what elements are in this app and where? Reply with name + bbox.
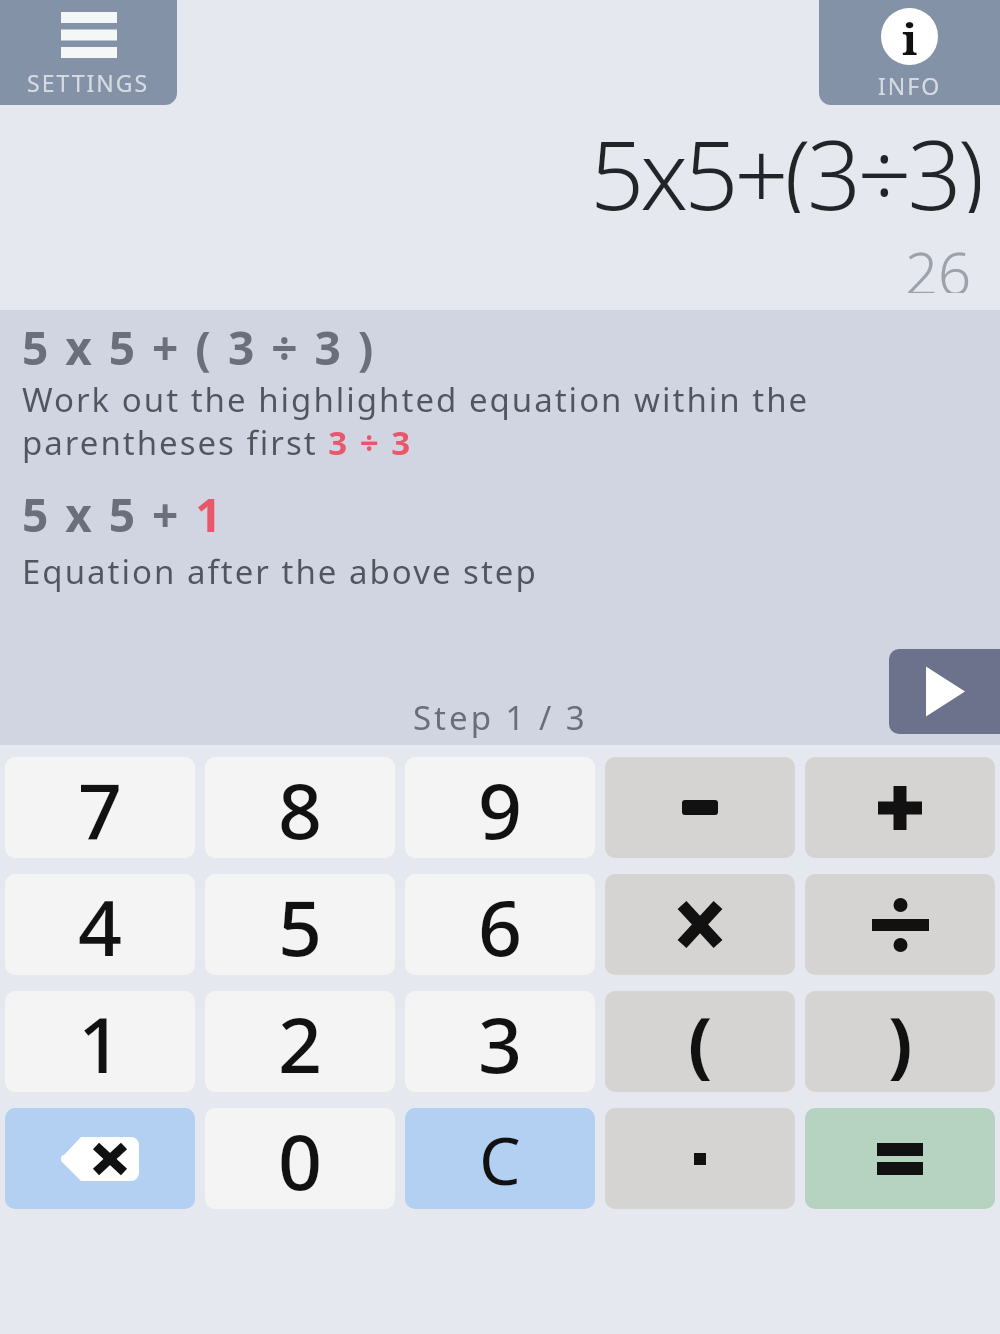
button[interactable]: 4 [5, 874, 195, 975]
staticText: 5x5+(3÷3) [590, 108, 980, 213]
button[interactable]: 6 [405, 874, 595, 975]
staticText: 2 [278, 991, 323, 1092]
button[interactable]: 7 [5, 757, 195, 858]
staticText: C [479, 1114, 521, 1204]
button[interactable]: 8 [205, 757, 395, 858]
button[interactable] [889, 649, 1000, 734]
button[interactable]: ( [605, 991, 795, 1092]
staticText: 8 [278, 757, 323, 858]
staticText: Step 1 / 3 [413, 695, 588, 740]
staticText: 7 [78, 757, 123, 858]
button[interactable] [5, 1108, 195, 1209]
staticText: 5 [278, 874, 323, 975]
button[interactable]: 2 [205, 991, 395, 1092]
staticText: i [902, 8, 918, 65]
staticText: 9 [478, 757, 523, 858]
button[interactable]: C [405, 1108, 595, 1209]
staticText: 1 [78, 991, 123, 1092]
staticText: 5 x 5 + ( 3 ÷ 3 ) [22, 316, 376, 379]
staticText: 5 x 5 + 1 [22, 483, 225, 546]
button[interactable]: ) [805, 991, 995, 1092]
button[interactable] [605, 757, 795, 858]
staticText: Equation after the above step [22, 549, 538, 594]
staticText: Work out the highlighted equation within… [22, 377, 810, 422]
button[interactable]: 3 [405, 991, 595, 1092]
button[interactable]: 5 [205, 874, 395, 975]
staticText: 0 [278, 1108, 323, 1209]
staticText: 3 [478, 991, 523, 1092]
button[interactable] [805, 874, 995, 975]
button[interactable]: 1 [5, 991, 195, 1092]
staticText: 26 [905, 233, 972, 293]
staticText: 6 [478, 874, 523, 975]
staticText: parentheses first 3 ÷ 3 [22, 420, 413, 465]
staticText: 4 [78, 874, 123, 975]
staticText: ( [688, 993, 713, 1091]
staticText: ) [888, 993, 913, 1091]
button[interactable] [605, 1108, 795, 1209]
staticText: INFO [878, 70, 942, 101]
button[interactable] [805, 1108, 995, 1209]
button[interactable]: 0 [205, 1108, 395, 1209]
staticText: SETTINGS [27, 67, 150, 98]
button[interactable] [605, 874, 795, 975]
button[interactable]: SETTINGS [0, 0, 177, 105]
button[interactable] [805, 757, 995, 858]
button[interactable]: i [819, 0, 1000, 105]
button[interactable]: 9 [405, 757, 595, 858]
